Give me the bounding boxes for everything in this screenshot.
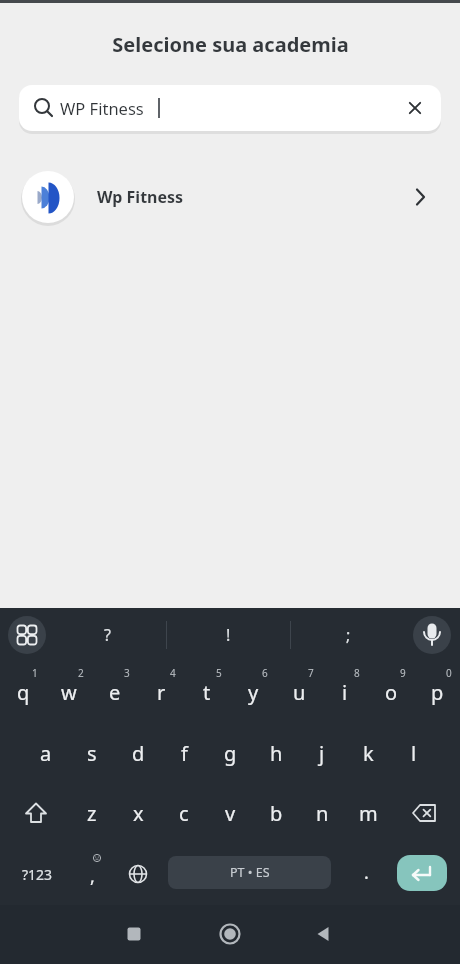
button[interactable]: ; <box>318 615 378 655</box>
staticText: c <box>179 800 189 827</box>
staticText: k <box>363 740 374 767</box>
staticText: PT • ES <box>230 864 270 881</box>
staticText: 4 <box>170 666 176 680</box>
button[interactable]: k <box>345 723 391 783</box>
staticText: r <box>157 679 166 706</box>
staticText: m <box>359 800 378 827</box>
staticText: t <box>203 679 211 706</box>
staticText: w <box>61 679 77 706</box>
staticText: 8 <box>354 666 360 680</box>
button[interactable] <box>8 616 46 654</box>
staticText: d <box>132 740 145 767</box>
button[interactable]: h <box>253 723 299 783</box>
staticText: e <box>109 679 121 706</box>
staticText: WP Fitness <box>60 97 144 119</box>
staticText: b <box>270 800 283 827</box>
staticText: g <box>224 740 237 767</box>
staticText: a <box>40 740 52 767</box>
staticText: f <box>181 740 188 767</box>
staticText: l <box>411 740 417 767</box>
staticText: ; <box>346 624 351 646</box>
staticText: 0 <box>446 666 452 680</box>
button[interactable]: o <box>368 662 414 723</box>
staticText: x <box>133 800 144 827</box>
button[interactable]: ! <box>198 615 258 655</box>
staticText: ?123 <box>22 865 53 884</box>
button[interactable]: w <box>46 662 92 723</box>
button[interactable]: q <box>0 662 46 723</box>
staticText: 9 <box>400 666 406 680</box>
button[interactable]: t <box>184 662 230 723</box>
staticText: y <box>248 679 259 706</box>
button[interactable]: m <box>345 783 391 843</box>
button[interactable]: j <box>299 723 345 783</box>
staticText: 6 <box>262 666 268 680</box>
button[interactable]: l <box>391 723 437 783</box>
staticText: q <box>17 679 30 706</box>
button[interactable]: z <box>69 783 115 843</box>
staticText: o <box>385 679 398 706</box>
button[interactable]: c <box>161 783 207 843</box>
button[interactable]: p <box>414 662 460 723</box>
staticText: Selecione sua academia <box>112 31 349 58</box>
staticText: 1 <box>32 666 38 680</box>
button[interactable] <box>308 919 338 949</box>
button[interactable] <box>397 855 447 891</box>
button[interactable]: PT • ES <box>168 856 331 889</box>
button[interactable]: r <box>138 662 184 723</box>
button[interactable]: Wp Fitness <box>0 168 460 226</box>
staticText: u <box>293 679 306 706</box>
staticText: . <box>364 860 369 885</box>
button[interactable]: x <box>115 783 161 843</box>
staticText: 7 <box>308 666 314 680</box>
staticText: ! <box>226 624 231 646</box>
button[interactable]: WP Fitness <box>19 85 441 131</box>
staticText: i <box>342 679 348 706</box>
button[interactable]: ? <box>77 615 137 655</box>
button[interactable]: e <box>92 662 138 723</box>
staticText: Wp Fitness <box>97 186 184 208</box>
staticText: z <box>87 800 97 827</box>
staticText: v <box>225 800 236 827</box>
button[interactable]: b <box>253 783 299 843</box>
staticText: s <box>87 740 97 767</box>
staticText: , <box>90 864 95 889</box>
button[interactable]: s <box>69 723 115 783</box>
button[interactable]: g <box>207 723 253 783</box>
button[interactable]: u <box>276 662 322 723</box>
staticText: p <box>431 679 444 706</box>
button[interactable]: d <box>115 723 161 783</box>
button[interactable] <box>392 85 438 131</box>
button[interactable] <box>119 919 149 949</box>
button[interactable]: v <box>207 783 253 843</box>
button[interactable]: n <box>299 783 345 843</box>
button[interactable]: f <box>161 723 207 783</box>
button[interactable]: . <box>343 845 389 903</box>
staticText: n <box>316 800 329 827</box>
staticText: 3 <box>124 666 130 680</box>
button[interactable]: i <box>322 662 368 723</box>
button[interactable] <box>8 783 64 843</box>
button[interactable] <box>413 616 451 654</box>
button[interactable] <box>396 783 452 843</box>
button[interactable] <box>115 845 161 903</box>
staticText: j <box>319 740 325 767</box>
staticText: h <box>270 740 283 767</box>
button[interactable]: , <box>69 845 115 903</box>
button[interactable]: a <box>23 723 69 783</box>
staticText: ? <box>104 624 111 646</box>
staticText: 2 <box>78 666 84 680</box>
button[interactable]: ?123 <box>8 845 66 903</box>
staticText: 5 <box>216 666 222 680</box>
button[interactable]: y <box>230 662 276 723</box>
button[interactable] <box>215 919 245 949</box>
